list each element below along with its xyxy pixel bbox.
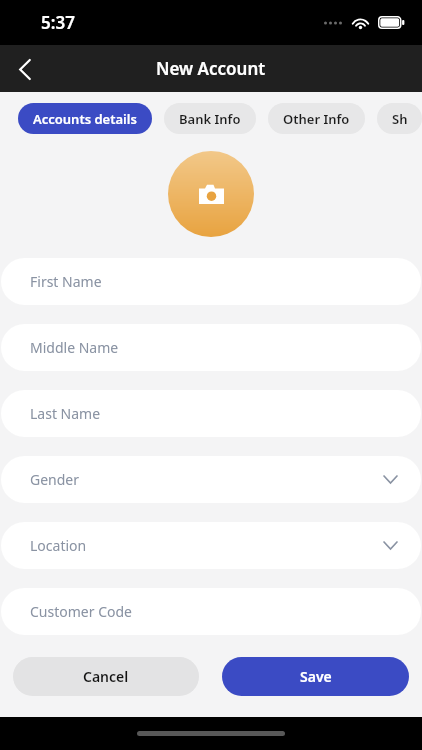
staticText: Location [30,536,87,555]
staticText: Shipping address [392,110,407,128]
staticText: Last Name [30,404,101,423]
staticText: Other Info [283,110,350,128]
staticText: Cancel [83,667,129,686]
button[interactable]: Accounts details [18,103,152,134]
button[interactable]: Middle Name [1,324,421,371]
staticText: Customer Code [30,602,132,621]
button[interactable]: Add profile photo [168,151,254,237]
staticText: Accounts details [33,110,137,128]
button[interactable]: Cancel [13,657,199,696]
staticText: Middle Name [30,338,119,357]
button[interactable]: Bank Info [164,103,256,134]
button[interactable]: Other Info [268,103,365,134]
staticText: Save [300,667,332,686]
staticText: 5:37 [41,11,75,34]
button[interactable]: Last Name [1,390,421,437]
button[interactable]: Back [5,49,45,89]
button[interactable]: Shipping address [377,103,422,134]
button[interactable]: Location [1,522,421,569]
staticText: Bank Info [179,110,241,128]
button[interactable]: Gender [1,456,421,503]
button[interactable]: Save [222,657,409,696]
staticText: First Name [30,272,102,291]
staticText: Gender [30,470,80,489]
staticText: New Account [156,57,266,80]
button[interactable]: Customer Code [1,588,421,635]
button[interactable]: First Name [1,258,421,305]
